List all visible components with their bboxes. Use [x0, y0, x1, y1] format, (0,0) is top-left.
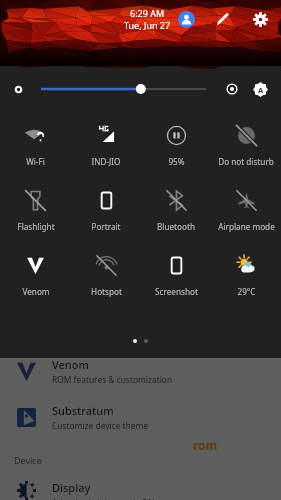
other: Portrait [96, 190, 117, 211]
staticText: Tue, Jun 27 [124, 19, 171, 31]
button[interactable]: IND-JIO [71, 116, 141, 167]
staticText: Adaptive brightness is ON [52, 497, 155, 500]
staticText: 6:29 AM [130, 7, 165, 19]
staticText: ROM features & customization [52, 374, 173, 385]
other: Venom [25, 255, 46, 276]
button[interactable]: Auto brightness [253, 82, 268, 97]
staticText: Venom [52, 357, 89, 372]
button[interactable]: Display [0, 480, 281, 500]
button[interactable]: Brightness [41, 79, 206, 99]
button[interactable]: Settings [249, 8, 271, 30]
staticText: Hotspot [91, 286, 122, 297]
staticText: Substratum [52, 403, 114, 418]
staticText: Display [52, 480, 91, 495]
other: Hotspot [96, 255, 117, 276]
staticText: 95% [168, 156, 185, 167]
button[interactable]: 95% [141, 116, 211, 167]
other: Screenshot [166, 255, 187, 276]
button[interactable]: Flashlight [0, 181, 71, 232]
staticText: Customize device theme [52, 420, 149, 431]
other: 29°C [236, 255, 257, 276]
other: Bluetooth [166, 190, 187, 211]
other: Do not disturb [236, 125, 257, 146]
button[interactable]: Bluetooth [141, 181, 211, 232]
other: Airplane mode [236, 190, 257, 211]
other: IND-JIO [96, 125, 117, 146]
button[interactable]: Venom [0, 246, 71, 297]
button[interactable]: Airplane mode [211, 181, 281, 232]
button[interactable]: Portrait [71, 181, 141, 232]
staticText: Flashlight [17, 221, 55, 232]
staticText: Bluetooth [157, 221, 195, 232]
button[interactable]: Screenshot [141, 246, 211, 297]
button[interactable]: Minimum brightness [13, 84, 24, 95]
staticText: Portrait [91, 221, 121, 232]
staticText: Venom [22, 286, 50, 297]
staticText: IND-JIO [91, 156, 121, 167]
staticText: Do not disturb [218, 156, 274, 167]
staticText: rom [193, 437, 218, 453]
staticText: Screenshot [155, 286, 198, 297]
button[interactable]: Maximum brightness [226, 83, 238, 95]
button[interactable]: 29°C [211, 246, 281, 297]
staticText: Wi-Fi [26, 156, 45, 167]
button[interactable]: User profile [175, 8, 197, 30]
staticText: 29°C [237, 286, 256, 297]
other: 95% [166, 125, 187, 146]
staticText: Device [14, 454, 42, 466]
other: Flashlight [25, 190, 46, 211]
other: Wi-Fi [25, 125, 46, 146]
staticText: A [258, 85, 264, 95]
button[interactable]: Substratum [0, 394, 281, 440]
button[interactable]: Hotspot [71, 246, 141, 297]
staticText: Airplane mode [218, 221, 275, 232]
button[interactable]: Edit tiles [212, 8, 234, 30]
button[interactable]: Wi-Fi [0, 116, 71, 167]
button[interactable]: Do not disturb [211, 116, 281, 167]
button[interactable]: Venom [0, 348, 281, 394]
